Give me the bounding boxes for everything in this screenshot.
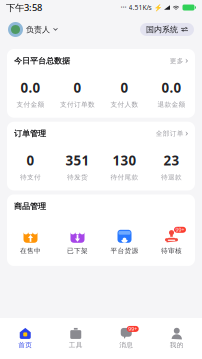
button[interactable]: 130 (101, 151, 148, 181)
button[interactable]: 351 (54, 151, 101, 181)
button[interactable]: 已下架 (54, 227, 101, 255)
staticText: 0.0 (161, 79, 181, 96)
staticText: 23 (163, 151, 179, 169)
staticText: 订单管理 (14, 129, 46, 138)
button[interactable]: 平台货源 (101, 227, 148, 255)
staticText: ⚡ (154, 4, 162, 11)
staticText: 待退款 (161, 173, 182, 181)
staticText: 负责人 (26, 25, 50, 34)
staticText: 351 (65, 151, 89, 169)
staticText: ··· (120, 2, 126, 13)
button[interactable]: 99+ (148, 227, 195, 255)
staticText: 全部订单 (156, 129, 184, 138)
staticText: 0 (73, 79, 81, 96)
staticText: 今日平台总数据 (14, 56, 70, 66)
button[interactable]: 0.0 (7, 79, 54, 109)
button[interactable]: 工具 (50, 328, 101, 349)
button[interactable]: 23 (148, 151, 195, 181)
staticText: 99+ (175, 226, 184, 233)
button[interactable]: 在售中 (7, 227, 54, 255)
staticText: 已下架 (67, 247, 88, 255)
button[interactable]: 0.0 (148, 79, 195, 109)
staticText: 支付金额 (16, 100, 44, 109)
staticText: 待支付 (20, 173, 41, 181)
staticText: 0 (120, 79, 128, 96)
button[interactable]: 0 (54, 79, 101, 109)
staticText: 99+ (128, 325, 137, 332)
staticText: 首页 (18, 341, 32, 349)
button[interactable]: 0 (101, 79, 148, 109)
staticText: 消息 (119, 341, 133, 349)
staticText: 商品管理 (14, 201, 46, 211)
button[interactable]: 99+ (101, 328, 151, 349)
button[interactable]: 负责人 (8, 22, 58, 37)
staticText: 在售中 (20, 247, 41, 255)
staticText: 支付人数 (110, 100, 138, 109)
staticText: 平台货源 (110, 247, 138, 255)
staticText: 退款金额 (157, 100, 185, 109)
staticText: 我的 (170, 341, 184, 349)
staticText: 待付尾款 (110, 173, 138, 181)
staticText: 0 (26, 151, 34, 169)
button[interactable]: 首页 (0, 328, 50, 349)
button[interactable]: 我的 (151, 328, 202, 349)
button[interactable]: 更多 (170, 57, 188, 65)
staticText: 国内系统 (146, 25, 178, 34)
staticText: 更多 (170, 57, 184, 65)
staticText: 待审核 (161, 247, 182, 255)
staticText: 4.51K/s (128, 3, 151, 12)
button[interactable]: 0 (7, 151, 54, 181)
staticText: 工具 (69, 341, 83, 349)
staticText: 下午3:58 (6, 1, 42, 14)
button[interactable]: 全部订单 (156, 129, 188, 138)
button[interactable]: 国内系统 (140, 23, 194, 36)
staticText: 待发货 (67, 173, 88, 181)
staticText: 0.0 (20, 79, 40, 96)
staticText: 支付订单数 (60, 100, 95, 109)
staticText: 130 (112, 151, 136, 169)
